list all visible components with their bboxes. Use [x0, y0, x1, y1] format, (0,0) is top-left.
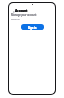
button[interactable]: Back	[12, 10, 15, 13]
button[interactable]: Back	[12, 9, 28, 13]
staticText: Signed in	[11, 18, 20, 21]
button[interactable]: Sign in	[21, 24, 44, 30]
staticText: Account	[15, 9, 28, 13]
staticText: Manage your account	[11, 13, 37, 17]
staticText: Manage your account	[11, 13, 37, 17]
staticText: Account	[15, 9, 28, 13]
staticText: Sign in	[28, 26, 37, 29]
staticText: Sign in	[28, 26, 37, 29]
staticText: Account	[15, 9, 28, 13]
staticText: Manage your account	[11, 13, 37, 17]
staticText: Signed in	[11, 18, 20, 21]
